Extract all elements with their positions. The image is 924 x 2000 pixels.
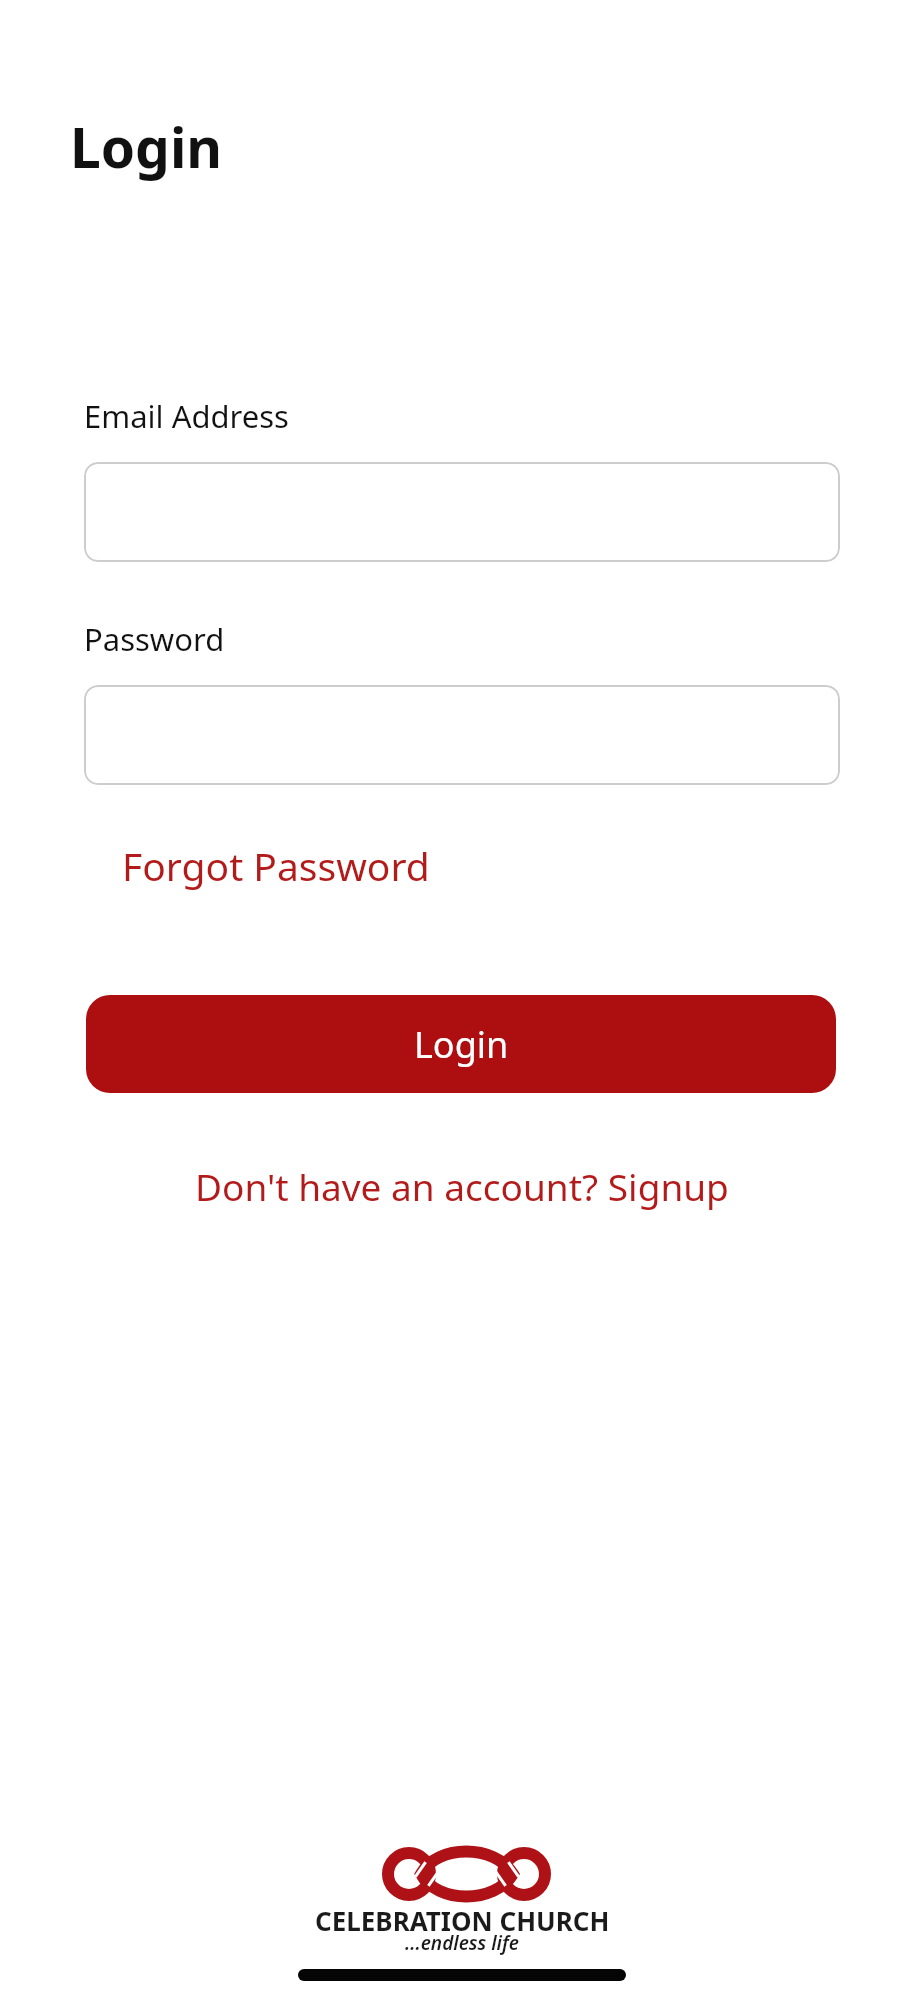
button[interactable]: Forgot Password bbox=[110, 827, 442, 904]
staticText: Forgot Password bbox=[122, 839, 430, 892]
button[interactable]: Login bbox=[86, 995, 836, 1093]
staticText: CELEBRATION CHURCH bbox=[315, 1903, 610, 1938]
button[interactable]: Don't have an account? Signup bbox=[187, 1153, 737, 1219]
button[interactable] bbox=[84, 685, 840, 785]
staticText: Password bbox=[84, 618, 225, 660]
staticText: Email Address bbox=[84, 395, 289, 437]
staticText: ...endless life bbox=[405, 1930, 519, 1956]
button[interactable] bbox=[84, 462, 840, 562]
staticText: Don't have an account? Signup bbox=[195, 1161, 729, 1211]
staticText: Login bbox=[414, 1020, 509, 1069]
staticText: Login bbox=[70, 109, 223, 184]
